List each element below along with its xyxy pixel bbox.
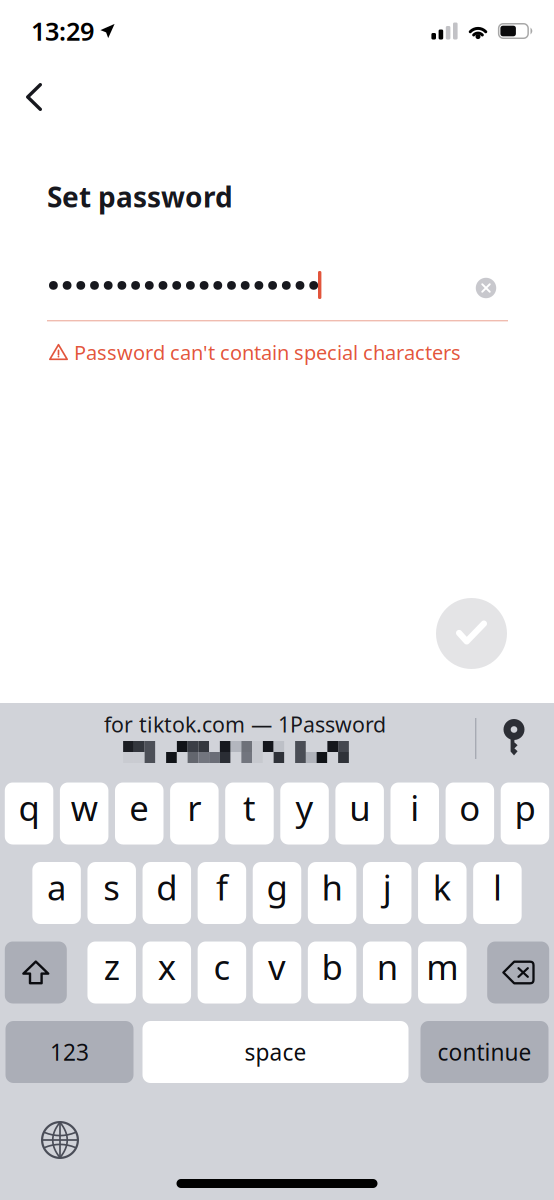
staticText: h <box>322 864 343 910</box>
button[interactable]: e <box>115 782 163 844</box>
staticText: for tiktok.com — 1Password <box>104 710 386 738</box>
staticText: a <box>47 864 66 910</box>
button[interactable]: q <box>5 782 53 844</box>
button[interactable]: l <box>473 862 522 924</box>
button[interactable]: d <box>142 862 191 924</box>
button[interactable]: o <box>446 782 494 844</box>
staticText: 13:29 <box>31 14 94 48</box>
button[interactable]: b <box>308 941 356 1003</box>
staticText: o <box>459 784 480 830</box>
staticText: m <box>426 943 458 989</box>
staticText: p <box>514 784 535 830</box>
button[interactable]: y <box>280 782 329 844</box>
button[interactable]: p <box>501 782 549 844</box>
staticText: Set password <box>47 178 233 215</box>
button[interactable]: m <box>418 941 467 1003</box>
staticText: r <box>187 784 201 830</box>
button[interactable]: z <box>87 941 136 1003</box>
button[interactable]: g <box>253 862 301 924</box>
button[interactable]: Delete <box>487 941 549 1003</box>
staticText: q <box>19 784 40 830</box>
staticText: 123 <box>50 1037 89 1067</box>
button[interactable]: space <box>142 1021 408 1083</box>
button[interactable]: Back <box>6 69 62 125</box>
button[interactable]: k <box>418 862 467 924</box>
staticText: j <box>383 864 392 910</box>
staticText: d <box>156 864 177 910</box>
button[interactable]: r <box>170 782 219 844</box>
staticText: u <box>349 784 370 830</box>
staticText: x <box>158 943 176 989</box>
staticText: n <box>377 943 398 989</box>
staticText: l <box>493 864 502 910</box>
button[interactable]: u <box>335 782 384 844</box>
staticText: i <box>410 784 419 830</box>
button[interactable]: Passwords <box>492 716 536 760</box>
staticText: w <box>71 784 98 830</box>
button[interactable]: i <box>390 782 439 844</box>
button[interactable]: c <box>198 941 246 1003</box>
button[interactable]: w <box>60 782 108 844</box>
button[interactable]: t <box>225 782 274 844</box>
staticText: k <box>433 864 452 910</box>
button[interactable]: Next keyboard <box>32 1112 88 1168</box>
button[interactable]: Shift <box>5 941 67 1003</box>
button[interactable]: x <box>142 941 191 1003</box>
button[interactable]: h <box>308 862 356 924</box>
staticText: space <box>244 1037 306 1067</box>
staticText: y <box>296 784 314 830</box>
staticText: s <box>103 864 120 910</box>
button[interactable]: a <box>32 862 81 924</box>
button[interactable]: continue <box>420 1021 548 1083</box>
staticText: c <box>213 943 230 989</box>
button[interactable]: 123 <box>5 1021 133 1083</box>
staticText: t <box>243 784 256 830</box>
staticText: e <box>129 784 149 830</box>
staticText: b <box>322 943 343 989</box>
button[interactable]: Submit <box>436 598 507 669</box>
staticText: f <box>216 864 228 910</box>
button[interactable]: f <box>198 862 246 924</box>
button[interactable]: s <box>87 862 136 924</box>
staticText: z <box>104 943 120 989</box>
staticText: g <box>266 864 287 910</box>
button[interactable]: n <box>363 941 411 1003</box>
button[interactable]: v <box>253 941 301 1003</box>
staticText: Password can't contain special character… <box>74 339 461 366</box>
button[interactable]: j <box>363 862 411 924</box>
button[interactable]: Clear text <box>465 267 507 309</box>
staticText: continue <box>437 1037 531 1067</box>
staticText: v <box>268 943 286 989</box>
